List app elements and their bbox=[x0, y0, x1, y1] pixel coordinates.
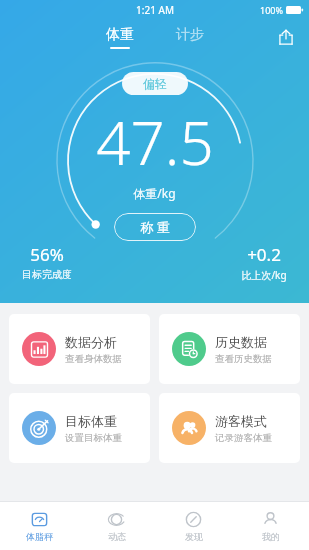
staticText: 1:21 AM bbox=[136, 3, 174, 17]
button[interactable]: 游客模式 bbox=[159, 393, 300, 463]
staticText: 历史数据 bbox=[215, 334, 267, 350]
staticText: 比上次/kg bbox=[241, 268, 287, 282]
button[interactable]: 计步 bbox=[172, 24, 208, 51]
button[interactable]: 历史数据 bbox=[159, 314, 300, 384]
staticText: 游客模式 bbox=[215, 413, 267, 429]
staticText: 目标体重 bbox=[65, 413, 117, 429]
staticText: 称 重 bbox=[140, 218, 170, 236]
staticText: 动态 bbox=[108, 531, 126, 542]
staticText: 发现 bbox=[185, 531, 203, 542]
staticText: 我的 bbox=[262, 531, 280, 542]
staticText: +0.2 bbox=[247, 243, 281, 266]
button[interactable]: 数据分析 bbox=[9, 314, 150, 384]
staticText: 查看历史数据 bbox=[215, 353, 272, 365]
button[interactable]: 体重 bbox=[102, 24, 138, 51]
staticText: 体脂秤 bbox=[26, 531, 53, 542]
staticText: 体重 bbox=[106, 26, 134, 44]
button[interactable]: 偏轻 bbox=[122, 72, 188, 95]
staticText: 体重/kg bbox=[133, 185, 176, 201]
staticText: 100% bbox=[260, 4, 283, 16]
staticText: 目标完成度 bbox=[22, 268, 72, 281]
button[interactable]: 体脂秤 bbox=[0, 502, 78, 550]
staticText: 数据分析 bbox=[65, 334, 117, 350]
staticText: 记录游客体重 bbox=[215, 432, 272, 444]
button[interactable]: Share bbox=[273, 24, 299, 50]
staticText: 56% bbox=[30, 243, 64, 266]
button[interactable]: 动态 bbox=[78, 502, 155, 550]
staticText: 47.5 bbox=[96, 101, 214, 183]
staticText: 查看身体数据 bbox=[65, 353, 122, 365]
button[interactable]: 称 重 bbox=[114, 213, 196, 241]
button[interactable]: 我的 bbox=[232, 502, 309, 550]
button[interactable]: 发现 bbox=[155, 502, 232, 550]
button[interactable]: 目标体重 bbox=[9, 393, 150, 463]
staticText: 偏轻 bbox=[143, 76, 167, 91]
staticText: 计步 bbox=[176, 26, 204, 44]
staticText: 设置目标体重 bbox=[65, 432, 122, 444]
